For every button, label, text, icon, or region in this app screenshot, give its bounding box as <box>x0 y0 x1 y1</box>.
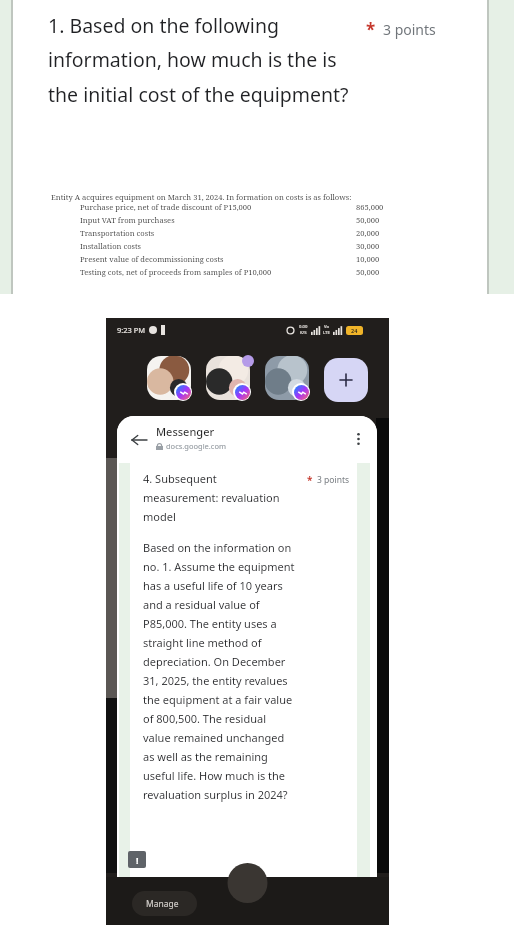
button[interactable]: Feedback <box>128 851 146 868</box>
staticText: * <box>366 18 376 41</box>
staticText: 4. Subsequent measurement: revaluation m… <box>143 471 293 524</box>
staticText: Present value of decommissioning costs <box>80 254 224 264</box>
button[interactable]: Open chat <box>265 356 309 400</box>
staticText: Testing cots, net of proceeds from sampl… <box>80 267 272 277</box>
staticText: Input VAT from purchases <box>80 215 175 225</box>
staticText: Purchase price, net of trade discount of… <box>80 202 252 212</box>
button[interactable]: Open chat <box>147 356 191 400</box>
button[interactable]: Back <box>125 426 153 454</box>
staticText: 865,000 <box>356 202 384 212</box>
button[interactable]: Manage <box>132 891 197 916</box>
staticText: 3 points <box>383 20 436 39</box>
staticText: 24 <box>351 327 358 334</box>
staticText: 9:23 PM <box>117 325 146 335</box>
staticText: 30,000 <box>356 241 380 251</box>
staticText: 50,000 <box>356 267 380 277</box>
staticText: LTE <box>323 330 330 336</box>
staticText: * <box>307 473 313 487</box>
staticText: Installation costs <box>80 241 142 251</box>
staticText: Entity A acquires equipment on March 31,… <box>51 192 352 202</box>
staticText: 10,000 <box>356 254 380 264</box>
button[interactable]: Open chat <box>206 356 250 400</box>
staticText: docs.google.com <box>166 441 226 451</box>
staticText: 50,000 <box>356 215 380 225</box>
staticText: Manage <box>146 898 179 910</box>
button[interactable]: New chat <box>324 358 368 402</box>
staticText: 0.00 <box>299 324 308 330</box>
staticText: Vo <box>324 324 329 330</box>
staticText: 1. Based on the following information, h… <box>48 12 358 108</box>
staticText: 3 points <box>317 474 350 486</box>
staticText: Based on the information on no. 1. Assum… <box>143 540 295 802</box>
staticText: K/S <box>300 330 307 336</box>
staticText: 20,000 <box>356 228 380 238</box>
staticText: ! <box>136 854 139 866</box>
staticText: Messenger <box>156 424 215 439</box>
button[interactable]: More options <box>345 426 371 452</box>
staticText: Transportation costs <box>80 228 155 238</box>
